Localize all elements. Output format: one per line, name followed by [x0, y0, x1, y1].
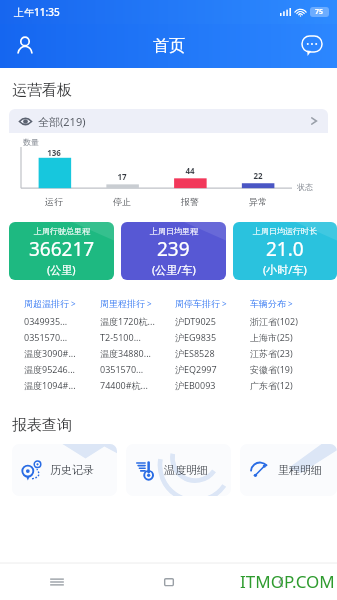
staticText: 温度95246...: [24, 363, 75, 375]
staticText: 浙江省(102): [250, 315, 298, 327]
staticText: 沪ES8528: [175, 347, 215, 359]
staticText: 运营看板: [12, 81, 72, 100]
button[interactable]: 上周日均里程: [121, 222, 226, 280]
staticText: 17: [117, 171, 127, 182]
button[interactable]: Profile: [8, 29, 42, 63]
staticText: 0349935...: [24, 315, 68, 327]
staticText: (小时/车): [263, 262, 307, 277]
staticText: 周停车排行: [175, 298, 220, 309]
staticText: 运行: [45, 196, 63, 207]
staticText: 366217: [29, 236, 95, 262]
button[interactable]: 全部(219): [9, 109, 328, 133]
button[interactable]: 历史记录: [12, 444, 117, 496]
staticText: 136: [47, 147, 61, 158]
staticText: 数量: [23, 137, 39, 147]
button[interactable]: 上周行驶总里程: [9, 222, 114, 280]
staticText: 上周行驶总里程: [34, 226, 90, 236]
button[interactable]: 温度明细: [126, 444, 231, 496]
staticText: >: [71, 298, 76, 309]
staticText: 74400#杭...: [100, 379, 148, 391]
staticText: 上周日均运行时长: [253, 226, 317, 236]
staticText: 21.0: [266, 236, 304, 262]
staticText: >: [222, 298, 227, 309]
staticText: 里程明细: [278, 463, 322, 477]
staticText: 沪EB0093: [175, 379, 216, 391]
button[interactable]: 车辆分布: [250, 298, 325, 309]
button[interactable]: 上周日均运行时长: [233, 222, 337, 280]
button[interactable]: 周超温排行: [24, 298, 100, 309]
staticText: 江苏省(23): [250, 347, 293, 359]
staticText: 安徽省(19): [250, 363, 293, 375]
staticText: 温度1720杭...: [100, 315, 155, 327]
staticText: 报表查询: [12, 416, 72, 435]
staticText: 温度明细: [164, 463, 208, 477]
staticText: ITMOP.COM: [240, 570, 335, 593]
staticText: 239: [157, 236, 190, 262]
staticText: (公里/车): [152, 262, 196, 277]
staticText: 首页: [153, 36, 185, 56]
staticText: 广东省(12): [250, 379, 293, 391]
staticText: 0351570...: [100, 363, 144, 375]
staticText: T2-5100...: [100, 331, 141, 343]
button[interactable]: Back: [266, 567, 296, 597]
staticText: 沪EG9835: [175, 331, 217, 343]
button[interactable]: 周停车排行: [175, 298, 250, 309]
staticText: 0351570...: [24, 331, 68, 343]
staticText: 报警: [181, 196, 199, 207]
staticText: 44: [185, 165, 195, 176]
staticText: 周超温排行: [24, 298, 69, 309]
button[interactable]: Recents: [42, 567, 72, 597]
button[interactable]: 周里程排行: [100, 298, 175, 309]
staticText: 温度34880...: [100, 347, 151, 359]
staticText: 上海市(25): [250, 331, 293, 343]
staticText: 异常: [249, 196, 267, 207]
staticText: 周里程排行: [100, 298, 145, 309]
staticText: >: [147, 298, 152, 309]
staticText: 沪EQ2997: [175, 363, 217, 375]
staticText: 停止: [113, 196, 131, 207]
button[interactable]: Home: [154, 567, 184, 597]
staticText: 全部(219): [38, 114, 86, 129]
staticText: 上午11:35: [14, 5, 60, 19]
staticText: 温度3090#...: [24, 347, 76, 359]
button[interactable]: 里程明细: [240, 444, 337, 496]
staticText: >: [288, 298, 293, 309]
staticText: 车辆分布: [250, 298, 286, 309]
staticText: 状态: [297, 182, 313, 192]
button[interactable]: More options: [295, 29, 329, 63]
staticText: 上周日均里程: [150, 226, 198, 236]
staticText: 22: [253, 170, 263, 181]
staticText: (公里): [47, 262, 76, 277]
staticText: 历史记录: [50, 463, 94, 477]
staticText: 温度1094#...: [24, 379, 76, 391]
staticText: 75: [315, 7, 324, 17]
staticText: 沪DT9025: [175, 315, 216, 327]
